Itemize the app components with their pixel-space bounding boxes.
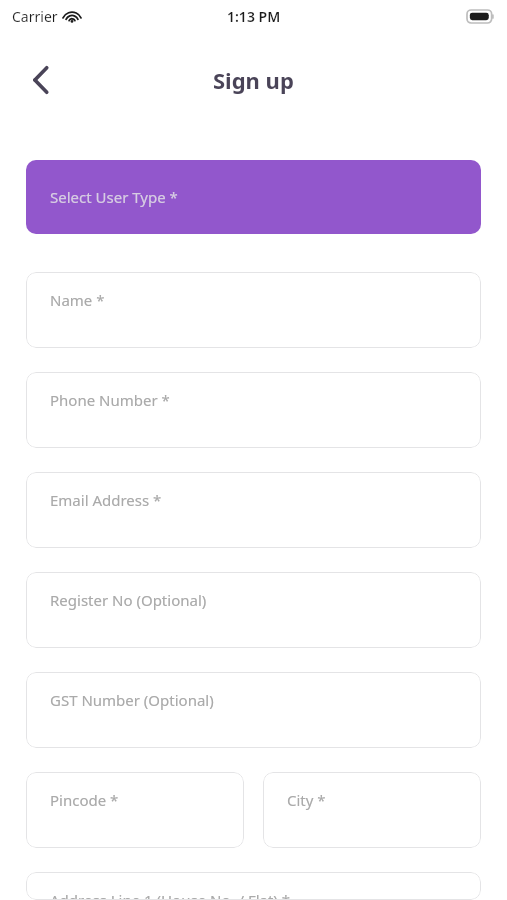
button[interactable]: Back (18, 57, 64, 103)
button[interactable]: Register No (Optional) (26, 572, 481, 648)
staticText: 1:13 PM (227, 7, 281, 26)
staticText: Select User Type * (50, 187, 178, 207)
staticText: City * (287, 790, 326, 810)
staticText: Register No (Optional) (50, 590, 207, 610)
staticText: Email Address * (50, 490, 162, 510)
staticText: Sign up (213, 65, 294, 95)
staticText: Name * (50, 290, 105, 310)
staticText: GST Number (Optional) (50, 690, 214, 710)
staticText: Pincode * (50, 790, 119, 810)
button[interactable]: Pincode * (26, 772, 244, 848)
button[interactable]: City * (263, 772, 481, 848)
button[interactable]: Address Line 1 (House No. / Flat) * (26, 872, 481, 900)
staticText: Address Line 1 (House No. / Flat) * (50, 890, 291, 900)
button[interactable]: GST Number (Optional) (26, 672, 481, 748)
staticText: Carrier (12, 7, 58, 26)
button[interactable]: Select User Type * (26, 160, 481, 234)
button[interactable]: Phone Number * (26, 372, 481, 448)
staticText: Phone Number * (50, 390, 170, 410)
button[interactable]: Name * (26, 272, 481, 348)
button[interactable]: Email Address * (26, 472, 481, 548)
